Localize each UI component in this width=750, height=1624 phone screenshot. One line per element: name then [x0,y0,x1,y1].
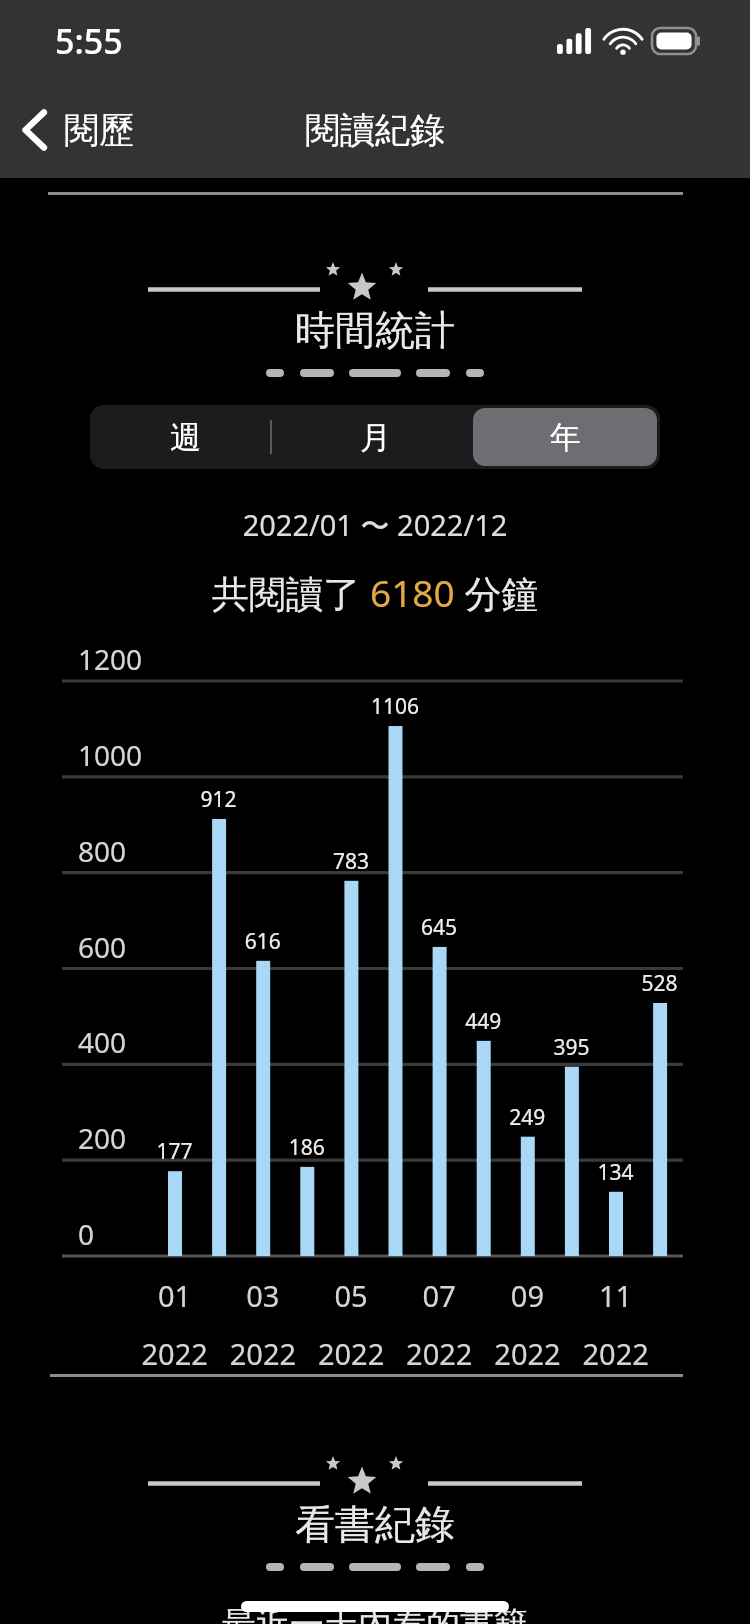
staticText: 年 [550,418,581,457]
staticText: 時間統計 [0,305,750,355]
staticText: 6180 [370,567,455,617]
staticText: 共閱讀了 [212,567,370,618]
other: Back [20,108,50,152]
staticText: 閱讀紀錄 [305,108,445,152]
staticText: 月 [360,418,391,457]
staticText: 分鐘 [455,567,539,618]
button[interactable]: 週 [93,408,277,466]
staticText: 週 [170,418,201,457]
staticText: 5:55 [55,18,123,64]
button[interactable]: 月 [283,408,467,466]
staticText: 閱歷 [64,108,134,152]
staticText: 2022/01 〜 2022/12 [0,505,750,545]
button[interactable]: Back [0,98,152,162]
staticText: 看書紀錄 [0,1499,750,1549]
staticText: 最近一天內看的書籍 [0,1603,750,1624]
button[interactable]: 年 [473,408,657,466]
